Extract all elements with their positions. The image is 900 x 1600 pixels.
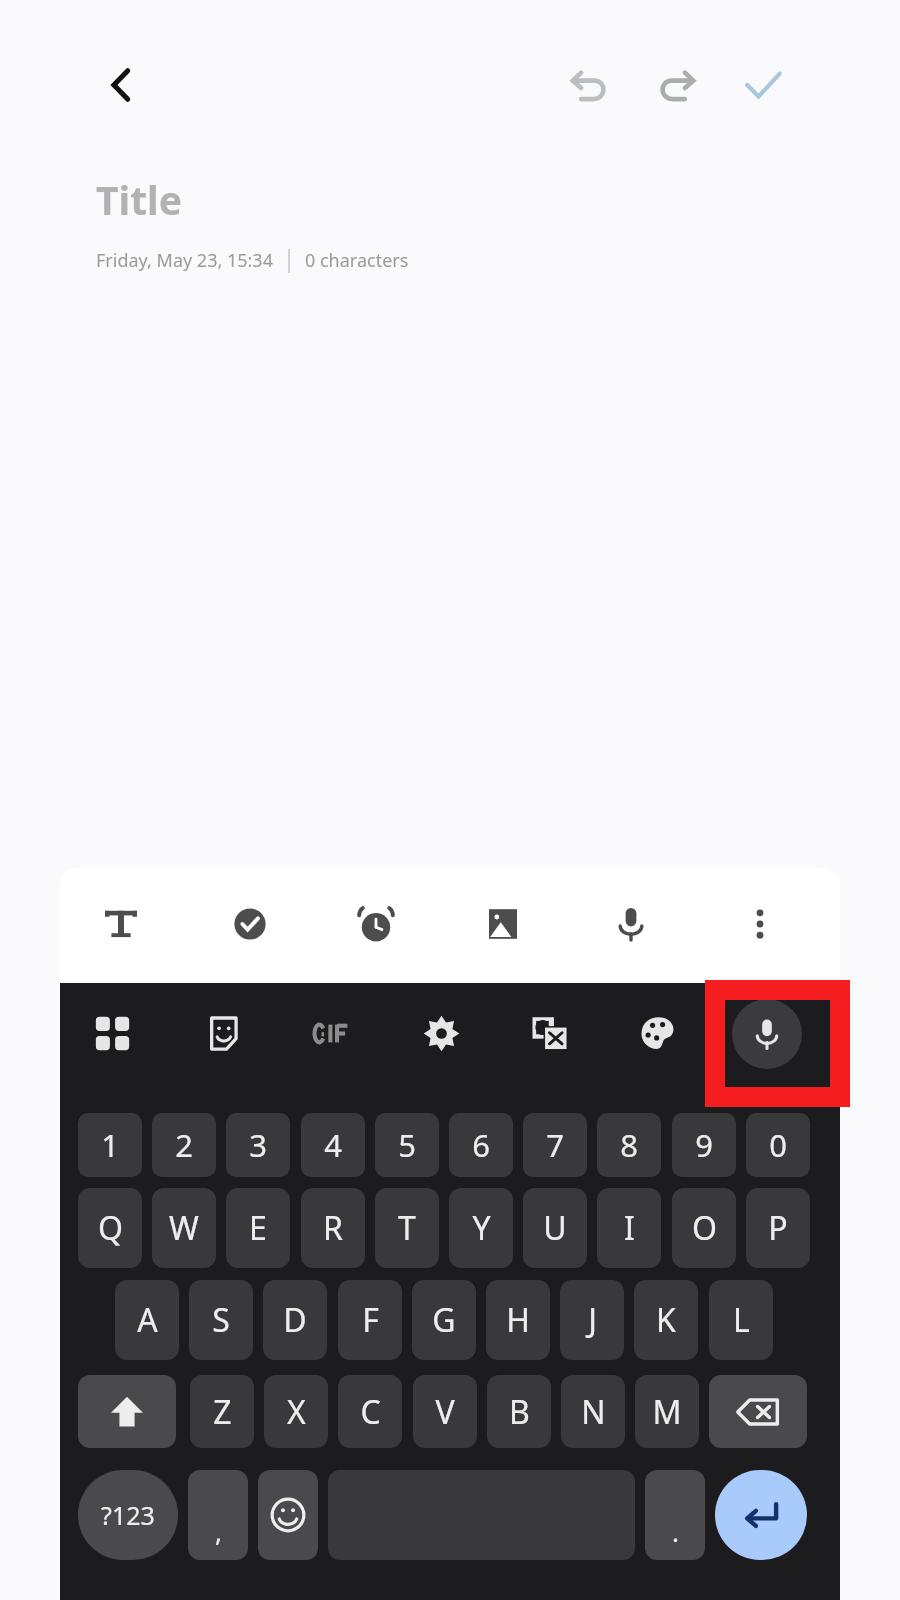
staticText: O: [692, 1206, 717, 1250]
staticText: C: [360, 1390, 381, 1434]
button[interactable]: Undo: [546, 42, 632, 128]
button[interactable]: Text format: [81, 884, 161, 964]
button[interactable]: 1: [78, 1113, 142, 1177]
button[interactable]: Emoji: [258, 1470, 318, 1560]
button[interactable]: Translate: [516, 1000, 582, 1066]
button[interactable]: U: [523, 1188, 587, 1268]
button[interactable]: Q: [78, 1188, 142, 1268]
staticText: .: [672, 1514, 679, 1549]
staticText: ,: [215, 1514, 222, 1549]
button[interactable]: S: [189, 1280, 253, 1360]
button[interactable]: Redo: [634, 42, 720, 128]
button[interactable]: X: [264, 1375, 328, 1448]
staticText: 0: [769, 1124, 787, 1166]
staticText: 9: [695, 1124, 713, 1166]
staticText: F: [362, 1298, 379, 1342]
button[interactable]: 3: [226, 1113, 290, 1177]
button[interactable]: Save note: [720, 42, 806, 128]
button[interactable]: B: [487, 1375, 551, 1448]
button[interactable]: E: [226, 1188, 290, 1268]
staticText: A: [137, 1298, 158, 1342]
button[interactable]: Back: [78, 42, 164, 128]
button[interactable]: V: [413, 1375, 477, 1448]
staticText: Y: [472, 1206, 491, 1250]
staticText: H: [506, 1298, 530, 1342]
button[interactable]: Z: [190, 1375, 254, 1448]
button[interactable]: GIF: [298, 1000, 364, 1066]
button[interactable]: W: [152, 1188, 216, 1268]
button[interactable]: R: [301, 1188, 365, 1268]
button[interactable]: H: [486, 1280, 550, 1360]
staticText: 1: [101, 1124, 119, 1166]
button[interactable]: Insert image: [463, 884, 543, 964]
button[interactable]: Y: [449, 1188, 513, 1268]
button[interactable]: 2: [152, 1113, 216, 1177]
button[interactable]: Enter: [715, 1470, 807, 1560]
button[interactable]: Stickers: [190, 1000, 256, 1066]
button[interactable]: 7: [523, 1113, 587, 1177]
button[interactable]: Keyboard settings: [408, 1000, 474, 1066]
staticText: R: [323, 1206, 343, 1250]
staticText: Q: [98, 1206, 123, 1250]
staticText: 2: [175, 1124, 193, 1166]
button[interactable]: Voice input: [731, 998, 803, 1070]
staticText: N: [581, 1390, 606, 1434]
staticText: T: [398, 1206, 416, 1250]
button[interactable]: O: [672, 1188, 736, 1268]
staticText: 3: [249, 1124, 267, 1166]
button[interactable]: C: [338, 1375, 402, 1448]
button[interactable]: D: [263, 1280, 327, 1360]
staticText: D: [283, 1298, 307, 1342]
button[interactable]: A: [115, 1280, 179, 1360]
button[interactable]: M: [635, 1375, 699, 1448]
button[interactable]: I: [597, 1188, 661, 1268]
button[interactable]: 8: [597, 1113, 661, 1177]
staticText: 4: [324, 1124, 342, 1166]
staticText: S: [212, 1298, 230, 1342]
button[interactable]: 4: [301, 1113, 365, 1177]
button[interactable]: Backspace: [709, 1375, 807, 1448]
button[interactable]: 9: [672, 1113, 736, 1177]
button[interactable]: .: [645, 1470, 705, 1560]
button[interactable]: Themes: [625, 1000, 691, 1066]
button[interactable]: K: [634, 1280, 698, 1360]
staticText: ?123: [101, 1498, 155, 1532]
staticText: G: [432, 1298, 456, 1342]
button[interactable]: 6: [449, 1113, 513, 1177]
staticText: 8: [620, 1124, 638, 1166]
button[interactable]: More options: [720, 884, 800, 964]
button[interactable]: Checklist: [210, 884, 290, 964]
button[interactable]: P: [746, 1188, 810, 1268]
staticText: X: [287, 1390, 306, 1434]
staticText: I: [624, 1206, 635, 1250]
button[interactable]: 0: [746, 1113, 810, 1177]
button[interactable]: F: [338, 1280, 402, 1360]
button[interactable]: L: [709, 1280, 773, 1360]
button[interactable]: Shift: [78, 1375, 176, 1448]
staticText: 7: [546, 1124, 564, 1166]
button[interactable]: J: [560, 1280, 624, 1360]
staticText: V: [435, 1390, 455, 1434]
staticText: B: [509, 1390, 530, 1434]
button[interactable]: 5: [375, 1113, 439, 1177]
staticText: W: [169, 1206, 199, 1250]
button[interactable]: ?123: [78, 1470, 178, 1560]
staticText: 6: [472, 1124, 490, 1166]
button[interactable]: Voice note: [591, 884, 671, 964]
staticText: Friday, May 23, 15:34: [96, 248, 273, 273]
staticText: P: [768, 1206, 788, 1250]
staticText: 5: [398, 1124, 416, 1166]
button[interactable]: Reminder: [336, 884, 416, 964]
button[interactable]: N: [561, 1375, 625, 1448]
staticText: M: [652, 1390, 682, 1434]
button[interactable]: ,: [188, 1470, 248, 1560]
button[interactable]: Apps: [79, 1000, 145, 1066]
staticText: U: [543, 1206, 567, 1250]
staticText: Z: [213, 1390, 232, 1434]
button[interactable]: G: [412, 1280, 476, 1360]
staticText: E: [249, 1206, 267, 1250]
button[interactable]: T: [375, 1188, 439, 1268]
staticText: K: [656, 1298, 676, 1342]
staticText: L: [733, 1298, 750, 1342]
